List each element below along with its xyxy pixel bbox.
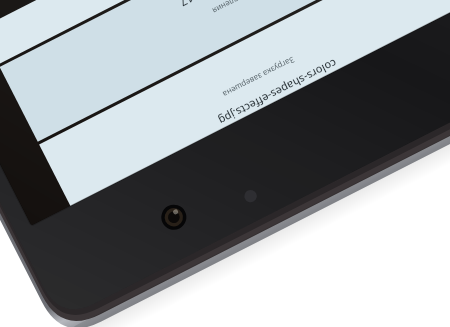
button[interactable]: Photograph of a smartphone lock screen w… [0,0,450,327]
